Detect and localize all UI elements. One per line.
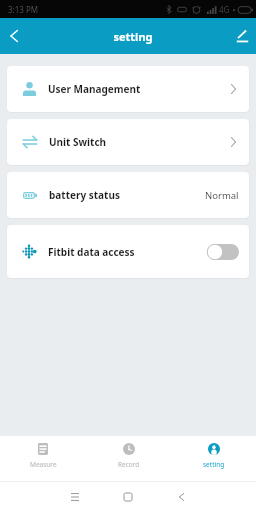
staticText: User Management <box>48 82 141 96</box>
staticText: 3:13 PM <box>8 4 39 15</box>
button[interactable]: Back <box>159 485 203 509</box>
button[interactable]: battery status <box>7 172 249 218</box>
button[interactable]: Fitbit data access toggle <box>207 244 239 260</box>
button[interactable]: Record <box>86 436 171 481</box>
staticText: battery status <box>49 188 120 202</box>
staticText: Record <box>118 460 140 469</box>
staticText: Measure <box>30 460 57 469</box>
button[interactable]: Measure <box>0 436 86 481</box>
staticText: Unit Switch <box>49 135 107 149</box>
button[interactable]: Unit Switch <box>7 119 249 165</box>
staticText: setting <box>203 460 225 469</box>
staticText: setting <box>113 29 153 44</box>
button[interactable]: User Management <box>7 66 249 112</box>
button[interactable]: Back <box>0 18 28 54</box>
staticText: Normal <box>205 189 239 202</box>
staticText: 4G <box>219 4 230 15</box>
button[interactable]: Menu <box>53 485 97 509</box>
button[interactable]: Home <box>106 485 150 509</box>
button[interactable]: setting <box>171 436 256 481</box>
button[interactable]: Fitbit data access <box>7 225 249 278</box>
button[interactable]: Edit <box>228 18 256 54</box>
staticText: Fitbit data access <box>48 245 135 259</box>
